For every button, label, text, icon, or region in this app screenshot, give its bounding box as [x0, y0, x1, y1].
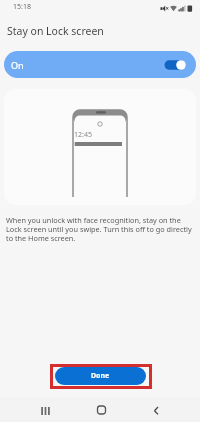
staticText: When you unlock with face recognition, s… — [6, 215, 192, 244]
button[interactable]: Done — [55, 367, 146, 385]
button[interactable] — [145, 398, 169, 422]
staticText: 15:18 — [13, 2, 31, 12]
staticText: On — [11, 59, 24, 71]
button[interactable]: On — [4, 51, 196, 78]
staticText: Done — [91, 371, 110, 381]
button[interactable] — [89, 398, 113, 422]
staticText: 12:45 — [74, 130, 92, 140]
staticText: Stay on Lock screen — [7, 24, 104, 38]
button[interactable] — [34, 398, 58, 422]
